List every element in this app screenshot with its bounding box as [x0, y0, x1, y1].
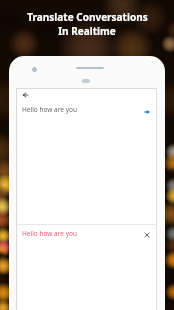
staticText: In Realtime [58, 24, 116, 38]
button[interactable]: Clear [138, 226, 156, 244]
staticText: Translate Conversations [27, 10, 148, 24]
staticText: Hello how are you [22, 229, 77, 238]
button[interactable]: Back [16, 86, 34, 104]
button[interactable]: Translate [138, 103, 156, 121]
staticText: Hello how are you [22, 105, 77, 114]
